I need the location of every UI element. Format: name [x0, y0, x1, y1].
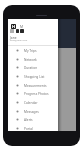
button[interactable]: Messages — [8, 107, 58, 116]
other: Network — [16, 58, 19, 61]
staticText: Progress Photos — [24, 92, 49, 96]
staticText: Duration — [24, 66, 38, 70]
other: Duration — [16, 66, 19, 69]
other: Alerts — [16, 118, 19, 121]
staticText: Messages — [24, 110, 39, 114]
button[interactable]: Measurements — [8, 81, 58, 90]
button[interactable]: Network — [8, 55, 58, 64]
other: Shopping List — [16, 75, 19, 78]
other: My Trips — [16, 49, 19, 52]
staticText: Measurements — [24, 84, 47, 88]
staticText: Portal — [24, 127, 33, 131]
staticText: My Trips — [24, 49, 37, 53]
button[interactable]: Shopping List — [8, 72, 58, 81]
button[interactable]: Calendar — [8, 98, 58, 107]
other: Measurements — [16, 84, 19, 87]
other: Calendar — [16, 101, 19, 104]
staticText: Calendar — [24, 101, 38, 105]
other: Messages — [16, 110, 19, 113]
staticText: Shopping List — [24, 75, 45, 79]
staticText: jane@mail.com — [10, 38, 28, 41]
staticText: Alerts — [24, 118, 33, 122]
button[interactable]: Portal — [8, 124, 58, 133]
other: Progress Photos — [16, 92, 19, 95]
staticText: Network — [24, 58, 37, 62]
other: Portal — [16, 127, 19, 130]
button[interactable]: Alerts — [8, 115, 58, 124]
staticText: M — [20, 24, 24, 29]
staticText: H — [12, 24, 16, 29]
button[interactable]: My Trips — [8, 46, 58, 55]
staticText: Jane — [10, 36, 17, 40]
button[interactable]: Progress Photos — [8, 89, 58, 98]
button[interactable]: Duration — [8, 63, 58, 72]
